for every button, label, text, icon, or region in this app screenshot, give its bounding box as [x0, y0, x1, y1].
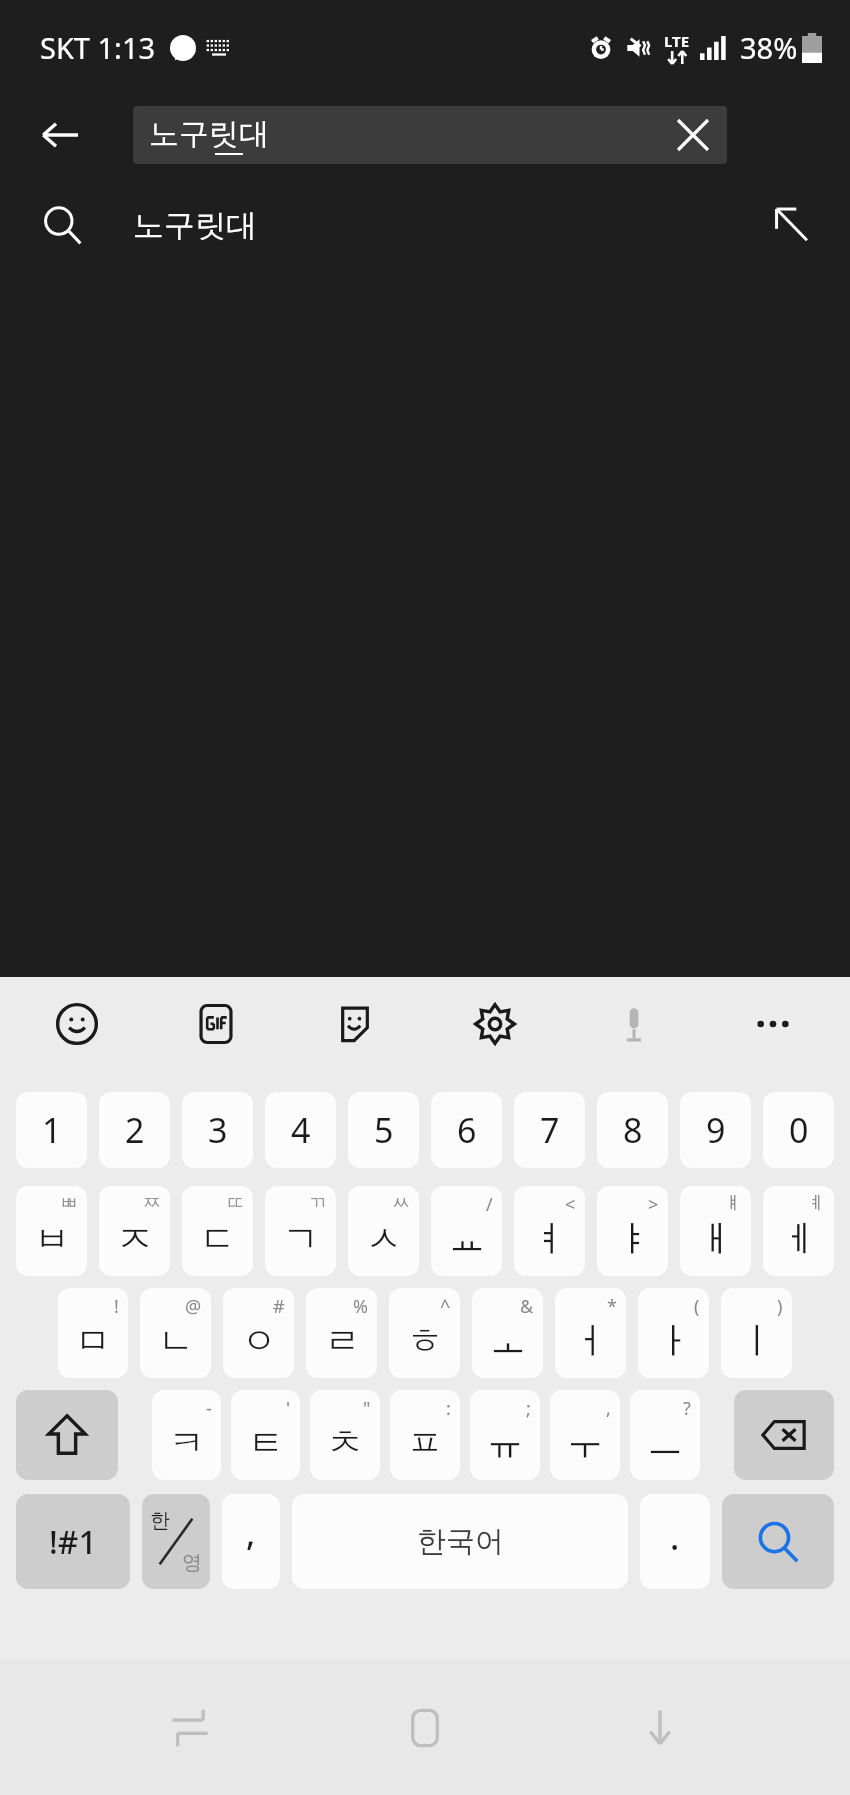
staticText: ㅓ: [573, 1318, 609, 1363]
staticText: ,: [606, 1396, 611, 1421]
staticText: ㄹ: [324, 1318, 360, 1363]
button[interactable]: ,: [550, 1390, 620, 1480]
button[interactable]: ): [721, 1288, 792, 1378]
button[interactable]: ': [231, 1390, 300, 1480]
button[interactable]: Recents: [145, 1683, 235, 1773]
button[interactable]: !#1: [16, 1494, 130, 1589]
staticText: ㅍ: [407, 1420, 443, 1465]
button[interactable]: Home: [380, 1683, 470, 1773]
staticText: 9: [706, 1107, 726, 1153]
button[interactable]: Shift: [16, 1390, 118, 1480]
button[interactable]: 7: [514, 1092, 585, 1168]
staticText: ㅊ: [327, 1420, 363, 1465]
staticText: ㅇ: [241, 1318, 277, 1363]
button[interactable]: Stickers: [318, 987, 392, 1061]
button[interactable]: &: [472, 1288, 543, 1378]
button[interactable]: 한국어: [292, 1494, 628, 1589]
staticText: 0: [789, 1107, 809, 1153]
staticText: -: [206, 1396, 212, 1421]
button[interactable]: Clear: [665, 107, 721, 163]
staticText: 7: [540, 1107, 560, 1153]
staticText: 한: [150, 1508, 170, 1533]
button[interactable]: GIF: [179, 987, 253, 1061]
staticText: 38%: [740, 28, 798, 67]
button[interactable]: Settings: [458, 987, 532, 1061]
staticText: ㅐ: [698, 1216, 734, 1261]
staticText: %: [353, 1294, 368, 1319]
button[interactable]: Backspace: [734, 1390, 834, 1480]
staticText: ㄲ: [309, 1192, 327, 1215]
button[interactable]: 8: [597, 1092, 668, 1168]
staticText: ㅜ: [567, 1420, 603, 1465]
button[interactable]: :: [390, 1390, 460, 1480]
staticText: ,: [246, 1510, 256, 1556]
staticText: <: [565, 1192, 576, 1217]
button[interactable]: 노구릿대: [133, 106, 727, 164]
staticText: 한국어: [417, 1523, 504, 1560]
button[interactable]: Language: [142, 1494, 210, 1589]
button[interactable]: Emoji: [40, 987, 114, 1061]
staticText: 영: [182, 1550, 202, 1575]
staticText: ㅎ: [407, 1318, 443, 1363]
button[interactable]: ": [310, 1390, 380, 1480]
button[interactable]: (: [638, 1288, 709, 1378]
staticText: LTE: [664, 31, 690, 51]
button[interactable]: /: [431, 1186, 502, 1276]
button[interactable]: ㅉ: [99, 1186, 170, 1276]
staticText: ^: [440, 1294, 451, 1319]
button[interactable]: More options: [736, 987, 810, 1061]
staticText: ): [777, 1294, 783, 1319]
button[interactable]: #: [223, 1288, 294, 1378]
staticText: @: [185, 1294, 202, 1319]
button[interactable]: ㄲ: [265, 1186, 336, 1276]
staticText: ?: [683, 1396, 691, 1421]
button[interactable]: *: [555, 1288, 626, 1378]
staticText: ㅌ: [248, 1420, 284, 1465]
button[interactable]: >: [597, 1186, 668, 1276]
staticText: #: [273, 1294, 285, 1319]
button[interactable]: ^: [389, 1288, 460, 1378]
button[interactable]: ㅆ: [348, 1186, 419, 1276]
button[interactable]: 3: [182, 1092, 253, 1168]
staticText: :: [446, 1396, 451, 1421]
button[interactable]: Search: [722, 1494, 834, 1589]
button[interactable]: 노구릿대: [0, 175, 850, 275]
staticText: ㅔ: [781, 1216, 817, 1261]
staticText: ': [286, 1396, 291, 1421]
button[interactable]: 2: [99, 1092, 170, 1168]
staticText: !: [114, 1294, 119, 1319]
staticText: 2: [125, 1107, 145, 1153]
button[interactable]: ㅒ: [680, 1186, 751, 1276]
staticText: 노구릿대: [133, 206, 257, 245]
button[interactable]: 0: [763, 1092, 834, 1168]
button[interactable]: Back: [24, 99, 96, 171]
button[interactable]: ㅖ: [763, 1186, 834, 1276]
button[interactable]: .: [640, 1494, 710, 1589]
button[interactable]: -: [152, 1390, 221, 1480]
button[interactable]: Voice input: [597, 987, 671, 1061]
staticText: .: [670, 1514, 680, 1560]
button[interactable]: !: [58, 1288, 128, 1378]
button[interactable]: ㄸ: [182, 1186, 253, 1276]
staticText: ㅣ: [739, 1318, 775, 1363]
button[interactable]: ㅃ: [16, 1186, 87, 1276]
button[interactable]: @: [140, 1288, 211, 1378]
button[interactable]: Insert suggestion: [760, 194, 822, 256]
button[interactable]: 9: [680, 1092, 751, 1168]
staticText: 4: [291, 1107, 311, 1153]
button[interactable]: ?: [630, 1390, 700, 1480]
staticText: ㄸ: [226, 1192, 244, 1215]
button[interactable]: 1: [16, 1092, 87, 1168]
staticText: >: [648, 1192, 659, 1217]
staticText: ㅃ: [60, 1192, 78, 1215]
button[interactable]: ;: [470, 1390, 540, 1480]
button[interactable]: ,: [222, 1494, 280, 1589]
button[interactable]: <: [514, 1186, 585, 1276]
button[interactable]: Hide keyboard: [615, 1683, 705, 1773]
button[interactable]: 6: [431, 1092, 502, 1168]
button[interactable]: 4: [265, 1092, 336, 1168]
button[interactable]: %: [306, 1288, 377, 1378]
staticText: ;: [526, 1396, 531, 1421]
staticText: ㅡ: [647, 1420, 683, 1465]
button[interactable]: 5: [348, 1092, 419, 1168]
